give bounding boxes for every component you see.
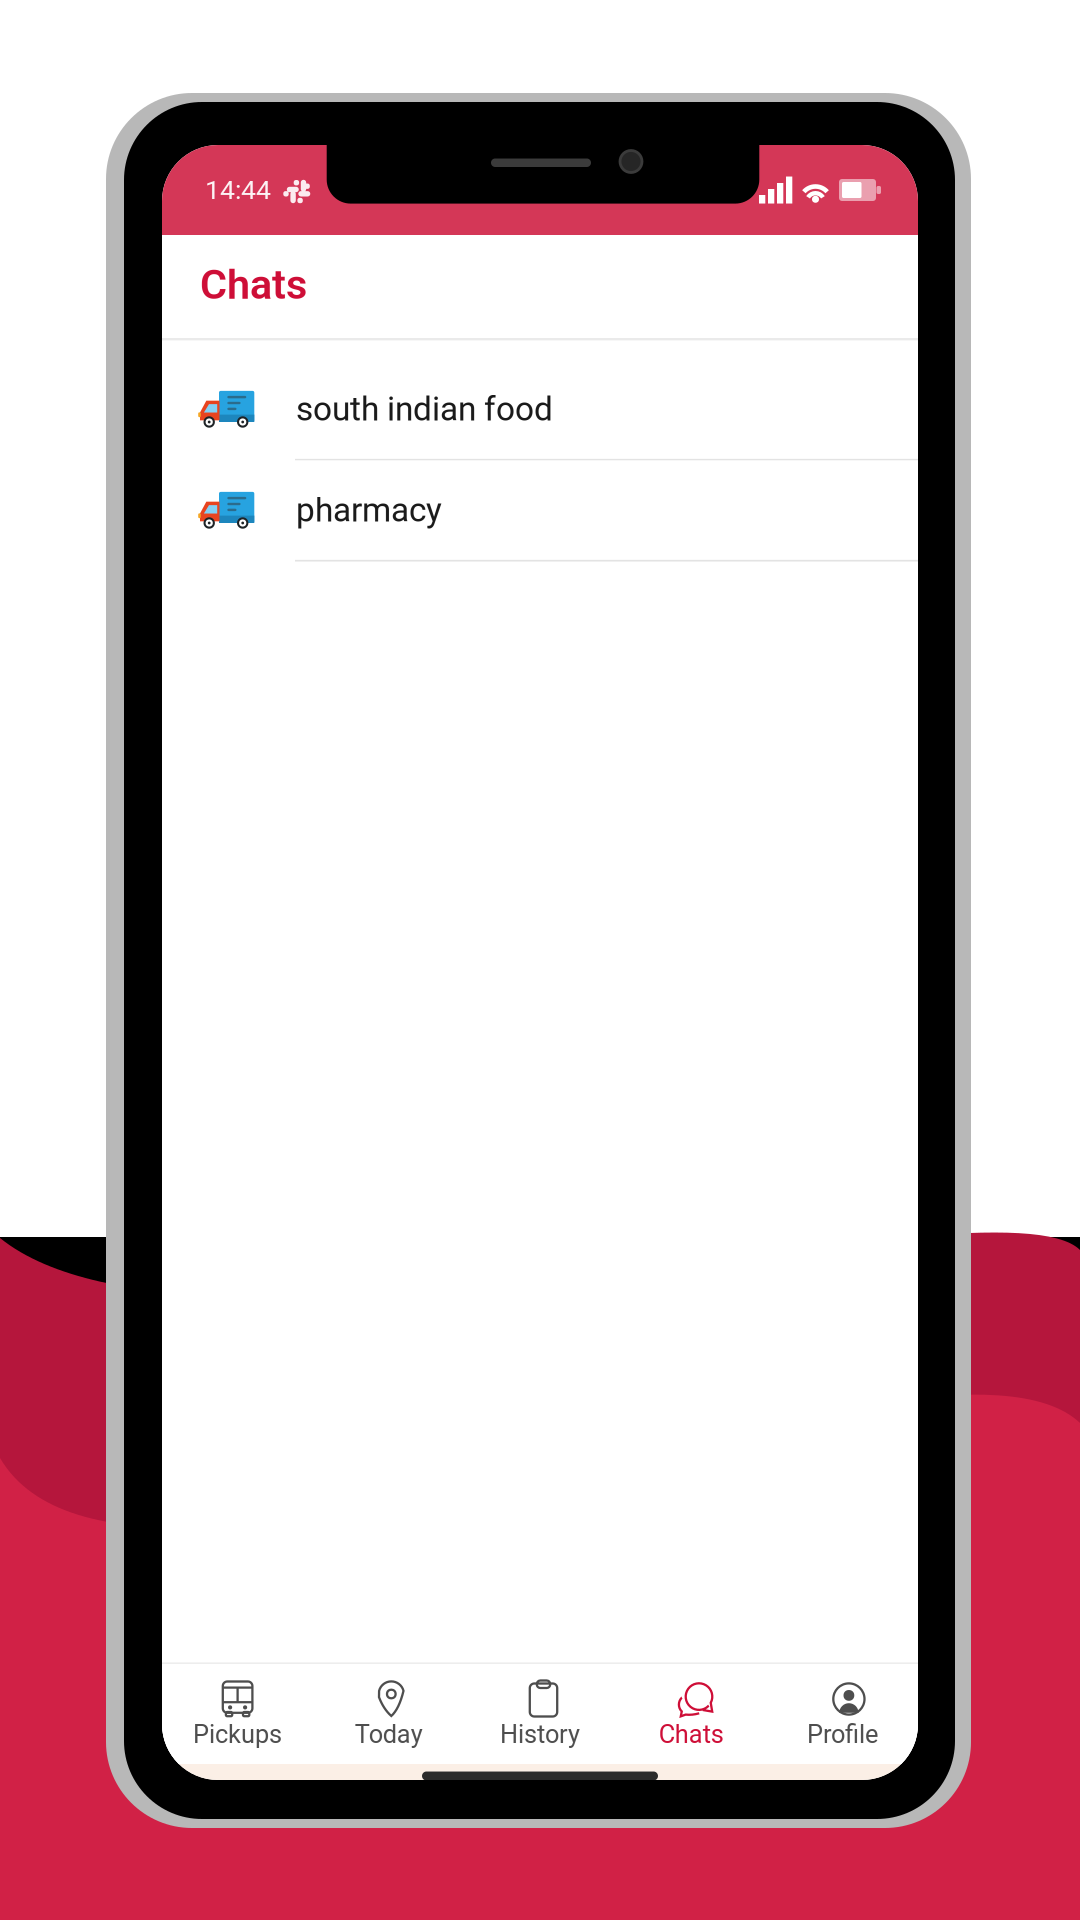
staticText: south indian food — [296, 390, 553, 429]
button[interactable]: pharmacy — [162, 460, 918, 561]
button[interactable]: Profile — [767, 1664, 918, 1764]
button[interactable]: Today — [313, 1664, 464, 1764]
staticText: 14:44 — [205, 174, 271, 206]
staticText: History — [500, 1719, 580, 1749]
staticText: Profile — [807, 1719, 878, 1749]
staticText: Chats — [200, 260, 307, 309]
staticText: Chats — [659, 1719, 724, 1749]
button[interactable]: Pickups — [162, 1664, 313, 1764]
button[interactable]: Chats — [616, 1664, 767, 1764]
staticText: Pickups — [193, 1719, 282, 1749]
button[interactable]: south indian food — [162, 344, 918, 460]
staticText: Today — [355, 1719, 423, 1749]
button[interactable]: History — [464, 1664, 616, 1764]
staticText: pharmacy — [296, 491, 442, 530]
